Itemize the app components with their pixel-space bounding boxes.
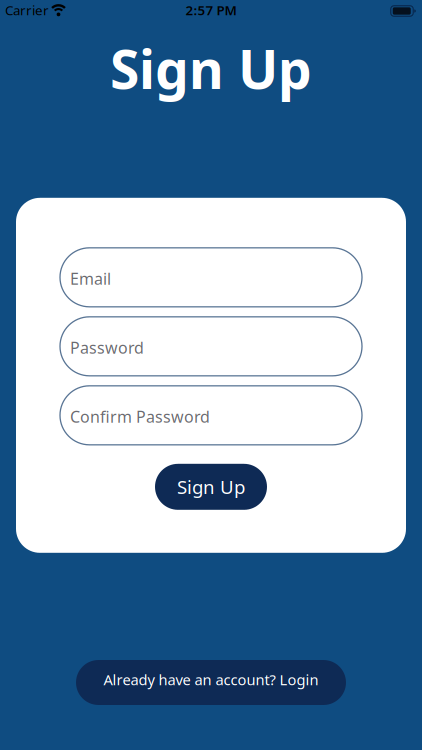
staticText: Sign Up bbox=[177, 474, 245, 499]
staticText: 2:57 PM bbox=[185, 1, 236, 19]
staticText: Confirm Password bbox=[70, 406, 210, 427]
button[interactable]: Confirm Password bbox=[60, 386, 362, 445]
staticText: Password bbox=[70, 337, 144, 358]
staticText: Email bbox=[70, 268, 111, 289]
staticText: Already have an account? Login bbox=[103, 670, 318, 689]
staticText: Carrier bbox=[5, 1, 49, 19]
button[interactable]: Sign Up bbox=[155, 464, 267, 510]
button[interactable]: Password bbox=[60, 317, 362, 376]
button[interactable]: Already have an account? Login bbox=[76, 660, 346, 705]
staticText: Sign Up bbox=[110, 33, 312, 104]
button[interactable]: Email bbox=[60, 248, 362, 307]
